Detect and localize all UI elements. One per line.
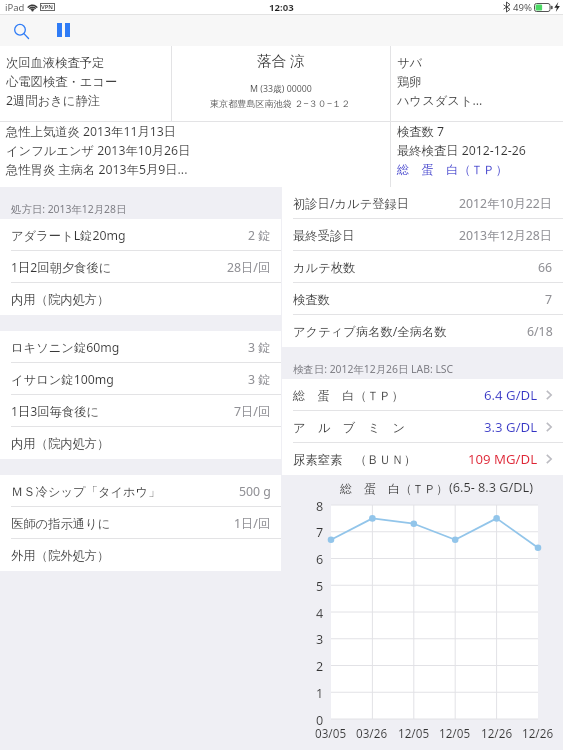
staticText: 最終検査日 2012-12-26 [397,142,526,159]
staticText: 2 [316,658,324,674]
staticText: 2週間おきに静注 [6,92,100,109]
button[interactable]: 尿素窒素 （ＢＵＮ） [282,443,563,475]
button[interactable]: ロキソニン錠60mg [0,331,281,363]
button[interactable]: 内用（院内処方） [0,427,281,459]
staticText: 鶏卵 [397,74,422,89]
staticText: 2013年12月28日 [459,227,553,244]
button[interactable]: アクティブ病名数/全病名数 [282,315,563,347]
staticText: 1日/回 [234,515,271,532]
button[interactable]: 検査数 [282,283,563,315]
button[interactable]: 医師の指示通りに [0,507,281,539]
button[interactable]: 外用（院外処方） [0,539,281,571]
button[interactable]: Pause [45,14,81,46]
staticText: ＭＳ冷シップ「タイホウ」 [11,484,161,499]
staticText: 総 蛋 白（ＴＰ） [293,387,404,404]
staticText: 5 [316,578,324,594]
staticText: 内用（院内処方） [11,436,110,451]
staticText: 1日3回毎食後に [11,403,100,420]
staticText: サバ [397,55,423,70]
staticText: 7 [545,291,553,308]
button[interactable]: 1日3回毎食後に [0,395,281,427]
staticText: 6 [316,551,324,567]
staticText: 8 [316,498,324,514]
staticText: 6.4 G/DL [484,386,538,404]
staticText: 7日/回 [234,403,271,420]
staticText: 最終受診日 [293,228,355,243]
staticText: 外用（院外処方） [11,548,110,563]
staticText: 12/26 [522,725,554,741]
staticText: M (33歳) 00000 [250,83,312,95]
staticText: 総 蛋 白（ＴＰ） [340,480,448,496]
staticText: 検査日: 2012年12月26日 LAB: LSC [293,362,454,376]
staticText: 初診日/カルテ登録日 [293,195,410,212]
staticText: 66 [538,259,553,276]
staticText: 2 錠 [248,227,271,244]
staticText: 心電図検査・エコー [6,74,118,89]
staticText: 総 蛋 白（ＴＰ） [397,161,508,178]
button[interactable]: アダラートL錠20mg [0,219,281,251]
staticText: 急性上気道炎 2013年11月13日 [6,123,177,140]
staticText: イサロン錠100mg [11,371,114,388]
button[interactable]: 最終受診日 [282,219,563,251]
staticText: 6/18 [527,323,553,340]
staticText: (6.5- 8.3 G/DL) [449,478,533,495]
staticText: 12:03 [269,1,294,14]
staticText: 03/26 [356,725,388,741]
staticText: 東京都豊島区南池袋 ２−３０−１２ [210,97,351,109]
staticText: 0 [316,712,324,728]
staticText: 次回血液検査予定 [6,55,105,70]
staticText: 500 g [239,483,271,500]
button[interactable]: Search [3,14,39,46]
staticText: 検査数 7 [397,123,445,140]
button[interactable]: ア ル ブ ミ ン [282,411,563,443]
button[interactable]: ＭＳ冷シップ「タイホウ」 [0,475,281,507]
staticText: VPN [41,3,54,11]
staticText: 12/05 [439,725,471,741]
staticText: ロキソニン錠60mg [11,339,120,356]
staticText: 内用（院内処方） [11,292,110,307]
staticText: 医師の指示通りに [11,516,111,531]
staticText: 7 [316,524,324,540]
staticText: 109 MG/DL [468,450,538,468]
staticText: ハウスダスト... [397,92,483,109]
staticText: 12/05 [398,725,430,741]
staticText: 3 錠 [248,339,271,356]
staticText: カルテ枚数 [293,260,356,275]
staticText: 3.3 G/DL [484,418,538,436]
staticText: 3 錠 [248,371,271,388]
staticText: 検査数 [293,292,330,307]
staticText: 処方日: 2013年12月28日 [11,202,127,216]
staticText: 03/05 [315,725,347,741]
button[interactable]: 初診日/カルテ登録日 [282,187,563,219]
staticText: 落合 涼 [257,50,305,70]
button[interactable]: 総 蛋 白（ＴＰ） [282,379,563,411]
staticText: アダラートL錠20mg [11,227,126,244]
button[interactable]: 1日2回朝夕食後に [0,251,281,283]
button[interactable]: イサロン錠100mg [0,363,281,395]
staticText: 3 [316,631,324,647]
staticText: 急性胃炎 主病名 2013年5月9日... [6,161,188,178]
staticText: 尿素窒素 （ＢＵＮ） [293,451,416,468]
staticText: 4 [316,605,324,621]
staticText: ア ル ブ ミ ン [293,419,406,436]
button[interactable]: 内用（院内処方） [0,283,281,315]
staticText: 1日2回朝夕食後に [11,259,112,276]
staticText: 28日/回 [227,259,271,276]
staticText: 12/26 [481,725,513,741]
button[interactable]: カルテ枚数 [282,251,563,283]
staticText: 1 [316,685,324,701]
staticText: 49% [513,1,532,14]
staticText: インフルエンザ 2013年10月26日 [6,142,191,159]
staticText: iPad [5,1,25,14]
staticText: アクティブ病名数/全病名数 [293,323,447,340]
staticText: 2012年10月22日 [459,195,553,212]
